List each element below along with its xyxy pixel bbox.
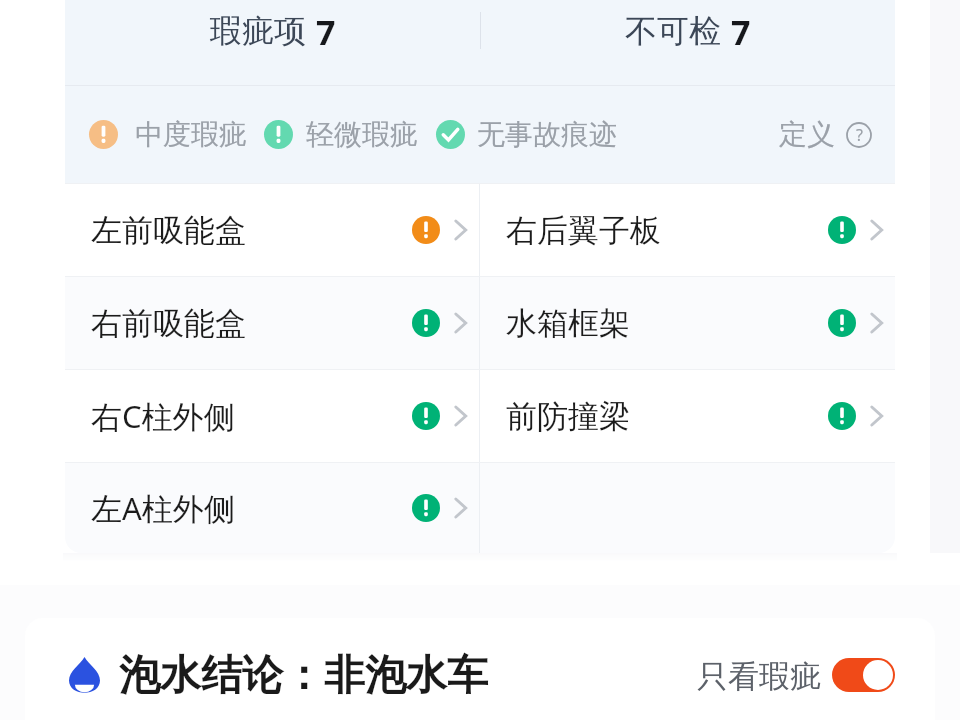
staticText: 无事故痕迹 [477, 117, 617, 152]
button[interactable]: 瑕疵项 [65, 0, 480, 62]
button[interactable]: 右C柱外侧 [65, 370, 479, 462]
staticText: 左A柱外侧 [91, 487, 235, 529]
staticText: 7 [316, 9, 336, 55]
button[interactable]: 不可检 [480, 0, 895, 62]
staticText: 轻微瑕疵 [306, 117, 418, 152]
staticText: 定义 [779, 117, 835, 152]
staticText: 前防撞梁 [506, 397, 630, 436]
staticText: ? [856, 124, 863, 146]
button[interactable]: 左A柱外侧 [65, 463, 479, 553]
staticText: 瑕疵项 [210, 11, 306, 51]
button[interactable]: 前防撞梁 [480, 370, 895, 462]
staticText: 右后翼子板 [506, 211, 661, 250]
button[interactable]: 左前吸能盒 [65, 184, 479, 276]
button[interactable]: Toggle show defects only [832, 658, 895, 692]
button[interactable]: 右前吸能盒 [65, 277, 479, 369]
staticText: 水箱框架 [506, 304, 630, 343]
button[interactable]: 右后翼子板 [480, 184, 895, 276]
staticText: 泡水结论：非泡水车 [119, 650, 488, 702]
staticText: 只看瑕疵 [697, 657, 821, 696]
button[interactable]: 只看瑕疵 [697, 657, 895, 696]
button[interactable]: 定义 / Definitions help [779, 117, 872, 152]
staticText: 左前吸能盒 [91, 211, 246, 250]
staticText: 中度瑕疵 [135, 117, 247, 152]
staticText: 7 [731, 9, 751, 55]
staticText: 右C柱外侧 [91, 395, 235, 437]
staticText: 右前吸能盒 [91, 304, 246, 343]
staticText: 不可检 [625, 11, 721, 51]
button[interactable]: 水箱框架 [480, 277, 895, 369]
